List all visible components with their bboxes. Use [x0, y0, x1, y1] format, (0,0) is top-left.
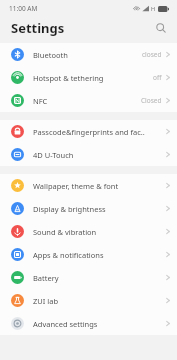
staticText: Hotspot & tethering [33, 73, 153, 83]
button[interactable]: ZUI lab [0, 289, 177, 312]
staticText: 4D U-Touch [33, 150, 166, 160]
button[interactable]: Wallpaper, theme & font [0, 174, 177, 197]
staticText: Wallpaper, theme & font [33, 181, 166, 191]
staticText: Battery [33, 273, 166, 283]
button[interactable]: Search [151, 18, 171, 38]
button[interactable]: NFC [0, 89, 177, 112]
staticText: H [151, 5, 156, 12]
staticText: Apps & notifications [33, 250, 166, 260]
button[interactable]: Passcode&fingerprints and fac.. [0, 120, 177, 143]
button[interactable]: 4D U-Touch [0, 143, 177, 166]
staticText: Advanced settings [33, 319, 166, 329]
button[interactable]: Display & brightness [0, 197, 177, 220]
staticText: Bluetooth [33, 50, 142, 60]
staticText: 11:00 AM [9, 4, 38, 13]
staticText: Settings [11, 19, 65, 37]
button[interactable]: Bluetooth [0, 43, 177, 66]
staticText: Display & brightness [33, 204, 166, 214]
staticText: Sound & vibration [33, 227, 166, 237]
button[interactable]: Apps & notifications [0, 243, 177, 266]
staticText: ZUI lab [33, 296, 166, 306]
staticText: off [153, 73, 162, 82]
button[interactable]: Sound & vibration [0, 220, 177, 243]
button[interactable]: Hotspot & tethering [0, 66, 177, 89]
staticText: closed [142, 50, 162, 59]
staticText: NFC [33, 96, 141, 106]
button[interactable]: Battery [0, 266, 177, 289]
button[interactable]: Advanced settings [0, 312, 177, 335]
staticText: Passcode&fingerprints and fac.. [33, 127, 166, 137]
staticText: Closed [141, 96, 162, 105]
